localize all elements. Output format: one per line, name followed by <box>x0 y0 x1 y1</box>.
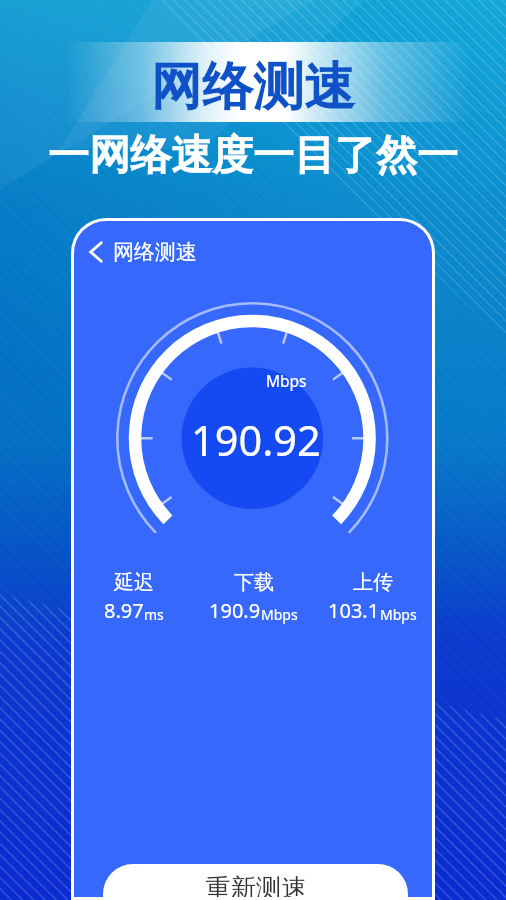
staticText: 上传 <box>353 570 393 595</box>
staticText: ms <box>144 605 164 624</box>
staticText: 下载 <box>234 570 274 595</box>
staticText: 网络测速 <box>113 239 197 265</box>
staticText: 重新测速 <box>205 872 307 897</box>
staticText: 190.92 <box>191 412 321 469</box>
staticText: 网络测速 <box>151 55 355 119</box>
staticText: 8.97 <box>104 597 144 624</box>
staticText: 103.1 <box>328 597 380 624</box>
staticText: 延迟 <box>114 570 154 595</box>
staticText: Mbps <box>266 370 307 391</box>
staticText: Mbps <box>380 605 417 624</box>
staticText: 一网络速度一目了然一 <box>48 130 458 182</box>
staticText: Mbps <box>261 605 298 624</box>
staticText: 190.9 <box>209 597 261 624</box>
button[interactable]: 重新测速 <box>103 864 408 897</box>
button[interactable]: Back <box>79 235 113 269</box>
